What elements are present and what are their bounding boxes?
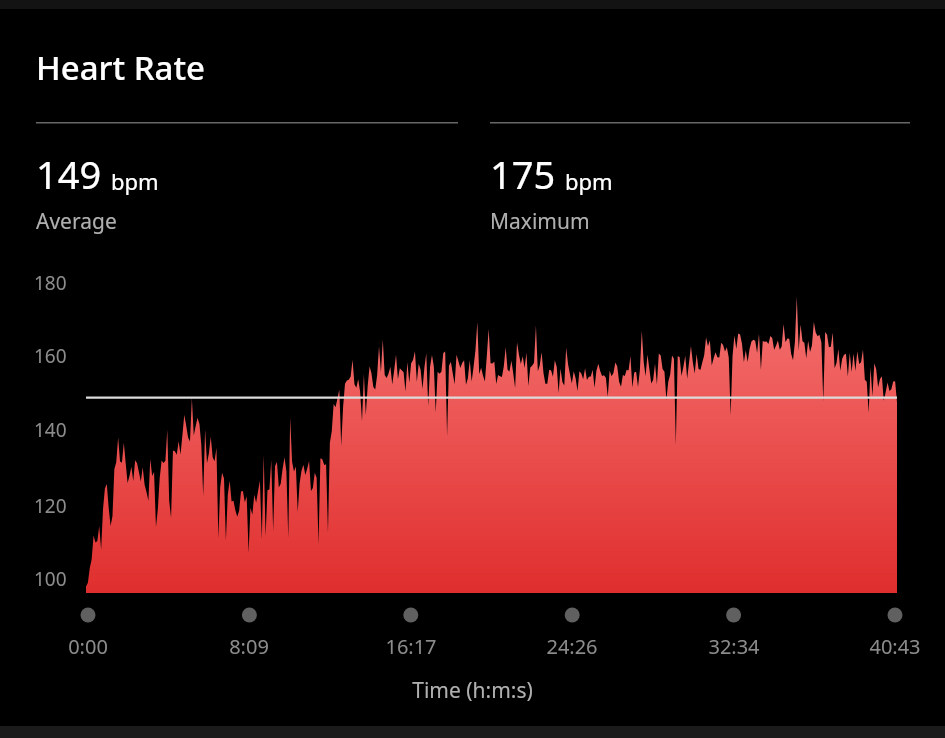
- button[interactable]: 149: [36, 148, 159, 236]
- staticText: 8:09: [204, 633, 294, 660]
- staticText: bpm: [565, 166, 613, 196]
- staticText: Maximum: [490, 207, 590, 236]
- staticText: 0:00: [43, 633, 133, 660]
- staticText: 40:43: [850, 633, 940, 660]
- button[interactable]: 175: [490, 148, 613, 236]
- staticText: bpm: [111, 166, 159, 196]
- staticText: 149: [36, 148, 102, 200]
- staticText: 160: [34, 343, 67, 369]
- button[interactable]: Heart Rate: [36, 45, 205, 90]
- staticText: Average: [36, 207, 117, 236]
- staticText: 180: [34, 270, 67, 296]
- button[interactable]: Heart rate chart over time: [86, 263, 897, 593]
- staticText: 120: [34, 493, 67, 519]
- staticText: 16:17: [366, 633, 456, 660]
- staticText: Heart Rate: [36, 45, 205, 90]
- staticText: 140: [34, 417, 67, 443]
- staticText: Time (h:m:s): [0, 676, 945, 705]
- staticText: 100: [34, 566, 67, 592]
- staticText: 32:34: [689, 633, 779, 660]
- staticText: 24:26: [527, 633, 617, 660]
- staticText: 175: [490, 148, 556, 200]
